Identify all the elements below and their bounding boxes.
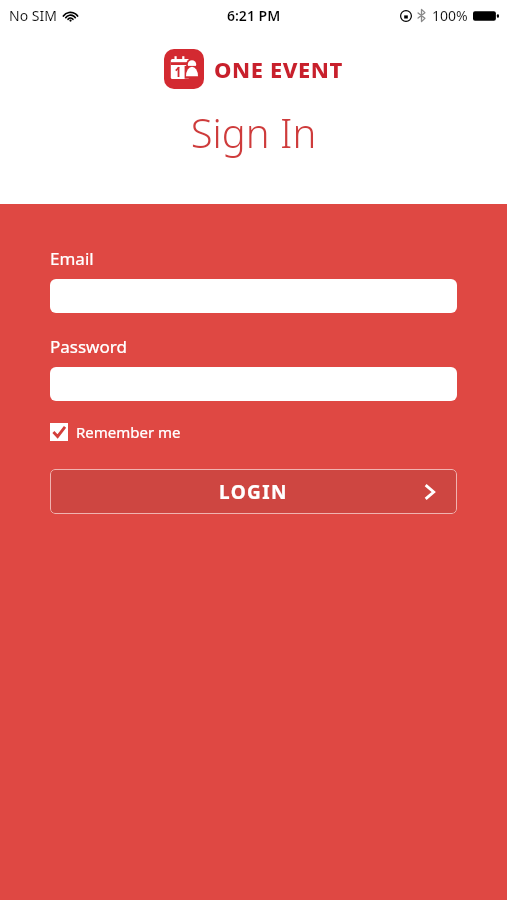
button[interactable] [50, 279, 457, 313]
staticText: Email [50, 247, 94, 270]
button[interactable]: LOGIN [50, 469, 457, 514]
button[interactable] [50, 367, 457, 401]
staticText: LOGIN [219, 479, 288, 505]
staticText: 6:21 PM [227, 6, 281, 25]
staticText: No SIM [9, 6, 57, 25]
staticText: Password [50, 335, 127, 358]
staticText: ONE EVENT [214, 54, 344, 84]
button[interactable]: Remember me [50, 420, 181, 444]
staticText: Remember me [76, 422, 181, 442]
staticText: Sign In [0, 105, 507, 159]
staticText: 100% [432, 6, 468, 25]
